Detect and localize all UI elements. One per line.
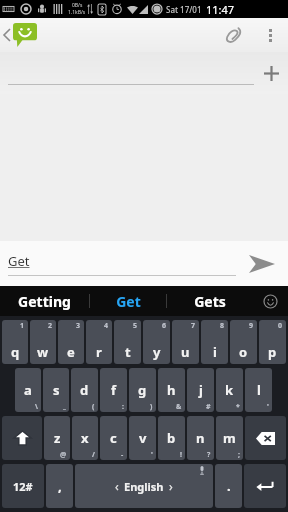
button[interactable] xyxy=(8,72,254,85)
button[interactable]: 12# xyxy=(2,464,44,508)
staticText: i xyxy=(213,343,217,361)
button[interactable]: q xyxy=(2,320,28,364)
button[interactable]: p xyxy=(259,320,286,364)
staticText: g xyxy=(138,381,147,399)
staticText: 12# xyxy=(13,479,33,494)
staticText: ) xyxy=(150,402,153,412)
button[interactable]: f xyxy=(100,368,127,412)
staticText: & xyxy=(176,402,182,412)
staticText: 4 xyxy=(104,321,109,331)
staticText: ? xyxy=(207,450,211,460)
staticText: 0B/s xyxy=(72,2,83,9)
button[interactable]: o xyxy=(230,320,257,364)
button[interactable]: Get xyxy=(8,252,236,276)
button[interactable]: m xyxy=(216,416,243,460)
button[interactable]: . xyxy=(215,464,242,508)
staticText: English xyxy=(124,479,164,494)
button[interactable]: n xyxy=(187,416,214,460)
button[interactable]: Send xyxy=(236,241,288,286)
button[interactable]: Get xyxy=(90,286,166,316)
staticText: b xyxy=(167,429,176,447)
staticText: 1 xyxy=(20,321,25,331)
staticText: ‹ xyxy=(115,478,119,494)
button[interactable]: Emoji xyxy=(252,286,288,316)
staticText: m xyxy=(223,429,236,447)
button[interactable]: b xyxy=(158,416,185,460)
staticText: 8 xyxy=(220,321,225,331)
button[interactable]: u xyxy=(172,320,199,364)
button[interactable]: h xyxy=(158,368,185,412)
staticText: p xyxy=(268,343,277,361)
staticText: ! xyxy=(180,450,182,460)
button[interactable]: x xyxy=(72,416,98,460)
staticText: \ xyxy=(35,402,38,412)
staticText: j xyxy=(199,381,203,399)
button[interactable]: j xyxy=(187,368,214,412)
button[interactable]: Delete xyxy=(245,416,286,460)
staticText: / xyxy=(92,450,95,460)
staticText: r xyxy=(96,343,102,361)
staticText: 9 xyxy=(249,321,254,331)
staticText: 2 xyxy=(48,321,53,331)
button[interactable]: Space, English xyxy=(75,464,213,508)
staticText: q xyxy=(11,343,20,361)
staticText: @ xyxy=(60,450,67,460)
staticText: n xyxy=(196,429,205,447)
button[interactable]: d xyxy=(71,368,98,412)
staticText: Gets xyxy=(194,292,226,311)
button[interactable]: Navigate up xyxy=(0,18,52,52)
button[interactable]: v xyxy=(129,416,156,460)
staticText: h xyxy=(167,381,176,399)
staticText: k xyxy=(225,381,234,399)
staticText: # xyxy=(206,402,211,412)
staticText: u xyxy=(181,343,190,361)
staticText: Get xyxy=(8,252,30,270)
button[interactable]: Gets xyxy=(167,286,252,316)
staticText: c xyxy=(110,429,117,447)
staticText: 0 xyxy=(278,321,283,331)
staticText: › xyxy=(169,478,173,494)
button[interactable]: Getting xyxy=(0,286,89,316)
button[interactable]: a xyxy=(15,368,41,412)
staticText: 6 xyxy=(162,321,167,331)
staticText: x xyxy=(81,429,89,447)
staticText: y xyxy=(153,343,161,361)
staticText: 3 xyxy=(76,321,81,331)
staticText: . xyxy=(227,477,231,495)
button[interactable]: c xyxy=(100,416,127,460)
button[interactable]: , xyxy=(46,464,73,508)
staticText: 7 xyxy=(191,321,196,331)
button[interactable]: g xyxy=(129,368,156,412)
staticText: t xyxy=(125,343,131,361)
button[interactable]: i xyxy=(201,320,228,364)
button[interactable]: Shift xyxy=(2,416,42,460)
staticText: o xyxy=(239,343,248,361)
button[interactable]: s xyxy=(43,368,69,412)
staticText: ; xyxy=(238,450,240,460)
button[interactable]: r xyxy=(86,320,112,364)
button[interactable]: k xyxy=(216,368,243,412)
staticText: ' xyxy=(267,402,269,412)
staticText: 11:47 xyxy=(206,2,235,17)
staticText: 5 xyxy=(133,321,138,331)
button[interactable]: y xyxy=(143,320,170,364)
staticText: Get xyxy=(116,292,141,311)
button[interactable]: Attach xyxy=(212,18,256,52)
staticText: - xyxy=(121,450,124,460)
staticText: ( xyxy=(92,402,95,412)
staticText: 1.1kB/s xyxy=(68,9,86,16)
button[interactable]: l xyxy=(245,368,272,412)
button[interactable]: w xyxy=(30,320,56,364)
staticText: _ xyxy=(63,402,66,412)
button[interactable]: t xyxy=(114,320,141,364)
button[interactable]: z xyxy=(44,416,70,460)
button[interactable]: More options xyxy=(256,18,284,52)
staticText: s xyxy=(53,381,60,399)
staticText: d xyxy=(80,381,89,399)
button[interactable]: Enter xyxy=(244,464,286,508)
staticText: * xyxy=(236,402,240,412)
staticText: w xyxy=(37,343,49,361)
staticText: z xyxy=(54,429,61,447)
button[interactable]: e xyxy=(58,320,84,364)
button[interactable]: Add recipient xyxy=(254,52,288,94)
